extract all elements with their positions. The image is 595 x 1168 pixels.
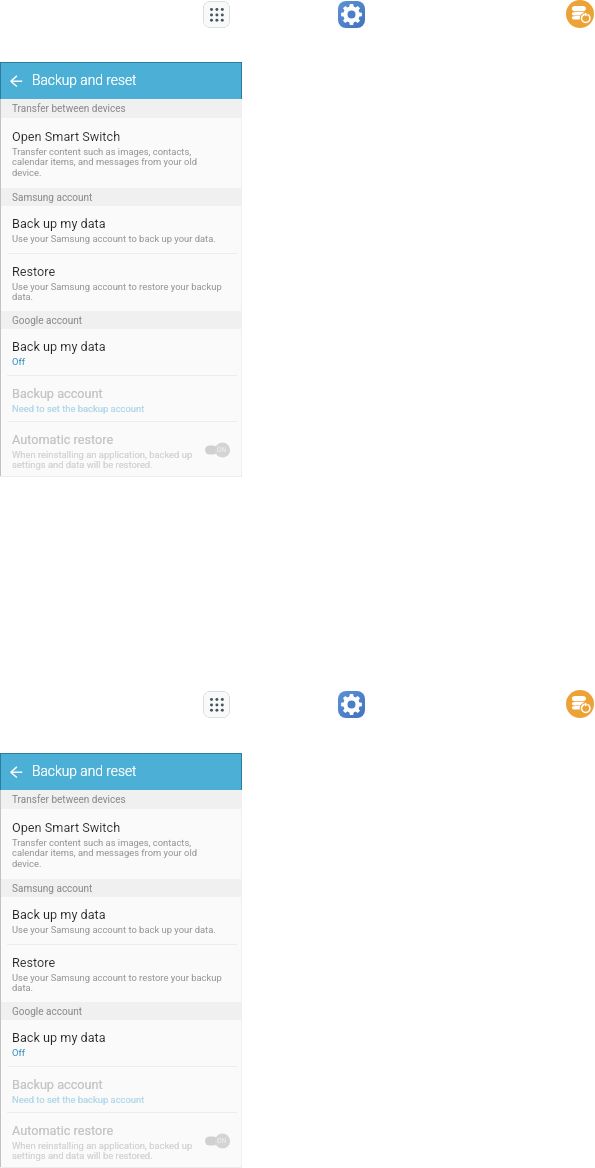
button[interactable]: Settings (338, 1, 365, 28)
staticText: Transfer content such as images, contact… (12, 146, 197, 179)
button[interactable]: Back up my data (0, 897, 242, 944)
staticText: Need to set the backup account (12, 403, 145, 414)
staticText: Google account (12, 1006, 82, 1018)
staticText: Use your Samsung account to back up your… (12, 924, 216, 935)
staticText: Use your Samsung account to restore your… (12, 281, 222, 303)
button[interactable]: Restore (0, 945, 242, 1002)
button[interactable]: Open Smart Switch (0, 118, 242, 188)
button[interactable]: Back up my data (0, 1020, 242, 1066)
button[interactable]: Back up my data (0, 206, 242, 253)
staticText: Samsung account (12, 192, 93, 204)
staticText: Transfer content such as images, contact… (12, 837, 197, 870)
staticText: Open Smart Switch (12, 820, 121, 835)
staticText: Off (12, 356, 25, 367)
staticText: Restore (12, 955, 56, 970)
button[interactable]: Backup and reset (566, 690, 594, 718)
staticText: Back up my data (12, 1030, 106, 1045)
staticText: Backup account (12, 1077, 103, 1092)
button[interactable]: Automatic restore (0, 1113, 242, 1168)
button[interactable]: Restore (0, 254, 242, 311)
button[interactable]: Back (5, 70, 27, 92)
button[interactable]: Backup account (0, 1067, 242, 1112)
staticText: Back up my data (12, 216, 106, 231)
staticText: Back up my data (12, 907, 106, 922)
staticText: Use your Samsung account to restore your… (12, 972, 222, 994)
button[interactable]: Back (5, 761, 27, 783)
button[interactable]: Open Smart Switch (0, 809, 242, 879)
staticText: When reinstalling an application, backed… (12, 449, 193, 471)
staticText: When reinstalling an application, backed… (12, 1140, 193, 1162)
staticText: Need to set the backup account (12, 1094, 145, 1105)
staticText: Off (12, 1047, 25, 1058)
staticText: Restore (12, 264, 56, 279)
staticText: Backup and reset (32, 72, 137, 88)
button[interactable]: Apps (203, 1, 230, 28)
staticText: Transfer between devices (12, 103, 126, 115)
staticText: Open Smart Switch (12, 129, 121, 144)
button[interactable]: Backup and reset (566, 0, 594, 28)
staticText: Transfer between devices (12, 794, 126, 806)
button[interactable]: Apps (203, 691, 230, 718)
button[interactable]: Settings (338, 691, 365, 718)
staticText: Automatic restore (12, 432, 114, 447)
button[interactable]: Backup account (0, 376, 242, 421)
button[interactable]: Automatic restore (0, 422, 242, 477)
staticText: Backup account (12, 386, 103, 401)
staticText: Backup and reset (32, 763, 137, 779)
staticText: ON (217, 446, 227, 454)
staticText: Google account (12, 315, 82, 327)
staticText: Use your Samsung account to back up your… (12, 233, 216, 244)
staticText: Automatic restore (12, 1123, 114, 1138)
button[interactable]: Back up my data (0, 329, 242, 375)
staticText: Samsung account (12, 883, 93, 895)
staticText: ON (217, 1137, 227, 1145)
staticText: Back up my data (12, 339, 106, 354)
